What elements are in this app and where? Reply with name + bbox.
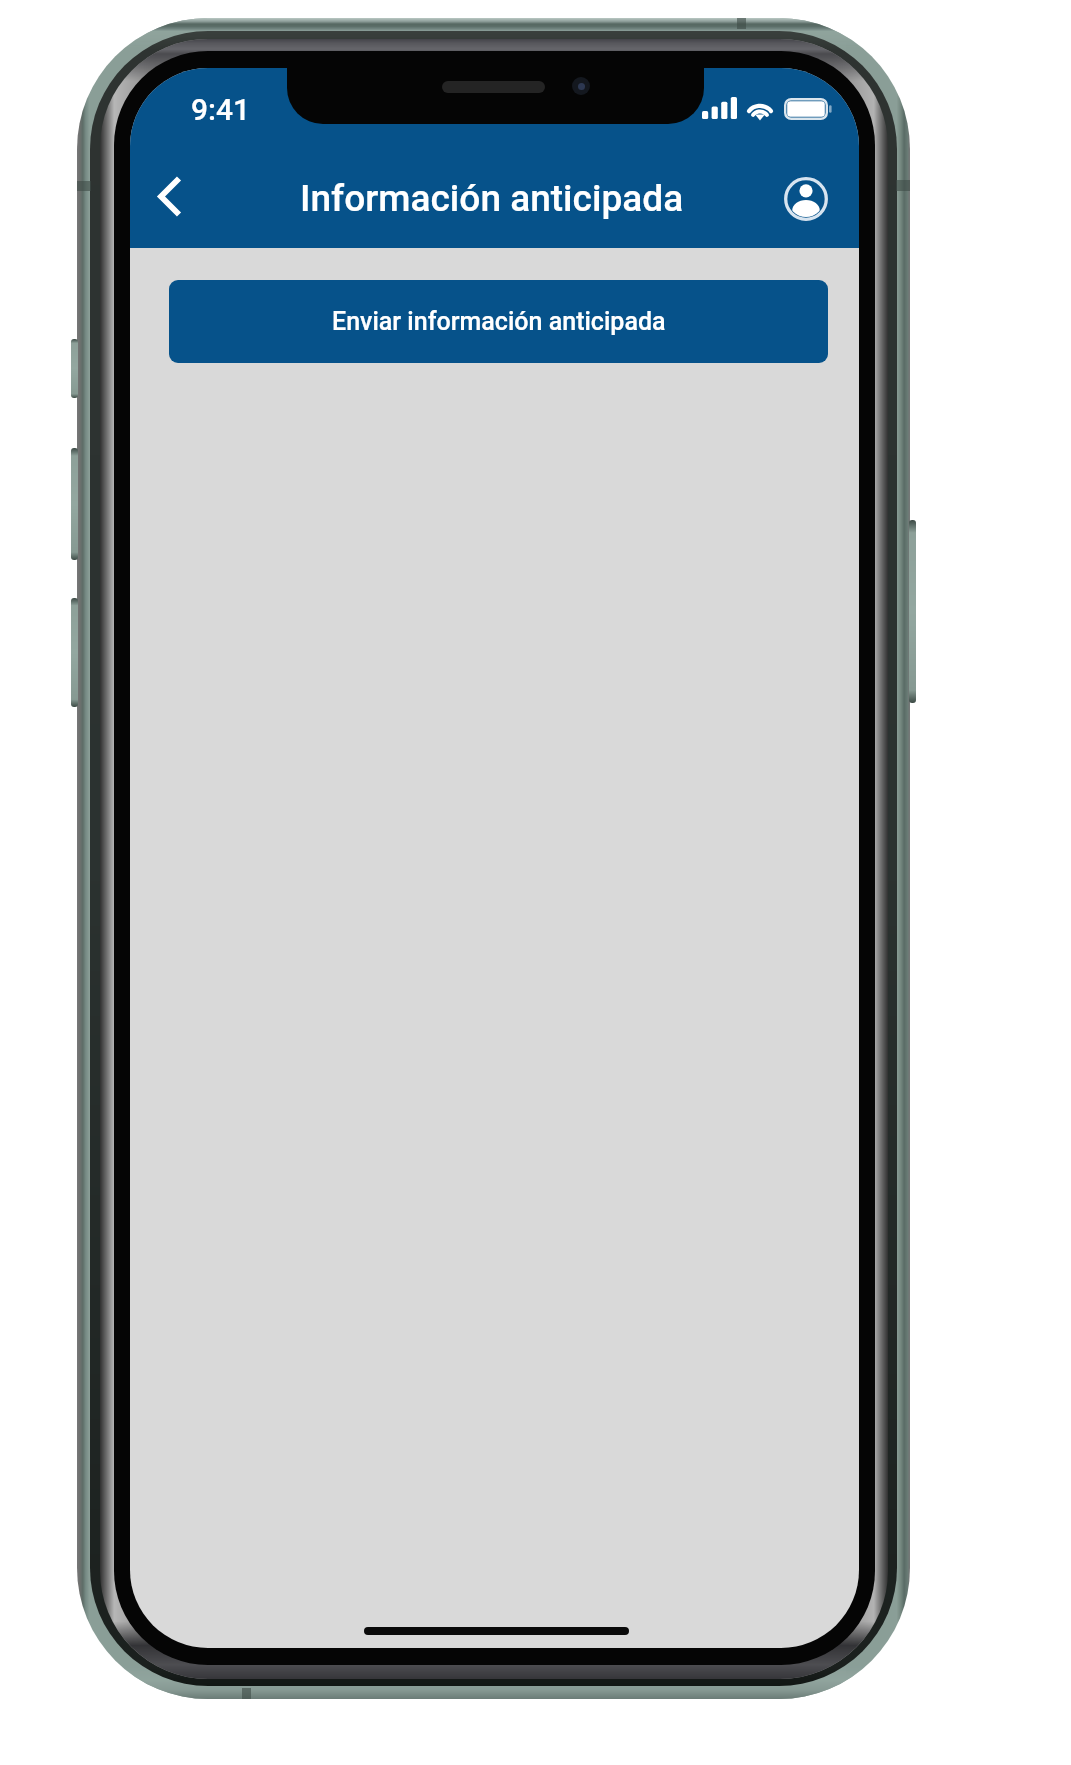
button[interactable]: Profile [772, 165, 840, 233]
staticText: 9:41 [191, 92, 251, 127]
staticText: Información anticipada [300, 177, 684, 220]
button[interactable]: Enviar información anticipada [169, 280, 828, 363]
button[interactable]: Back [141, 167, 203, 229]
staticText: Enviar información anticipada [332, 307, 666, 336]
